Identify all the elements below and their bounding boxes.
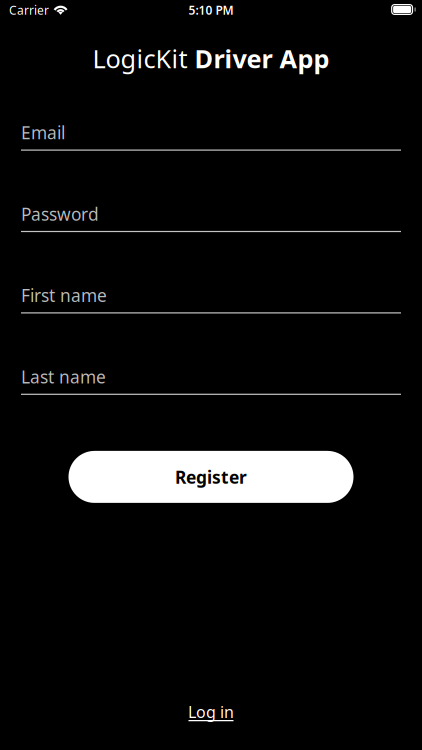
button[interactable]: Password — [21, 202, 401, 232]
staticText: First name — [21, 284, 107, 307]
button[interactable]: Email — [21, 120, 401, 151]
staticText: Email — [21, 121, 65, 144]
button[interactable]: Register — [68, 451, 353, 503]
staticText: Driver App — [194, 42, 329, 75]
staticText: Log in — [188, 701, 234, 722]
staticText: Register — [175, 465, 247, 488]
button[interactable]: Last name — [21, 365, 401, 395]
staticText: 5:10 PM — [188, 2, 233, 18]
staticText: Password — [21, 202, 99, 225]
staticText: Last name — [21, 365, 106, 388]
button[interactable]: First name — [21, 283, 401, 313]
staticText: LogicKit — [92, 42, 194, 75]
staticText: Carrier — [9, 2, 49, 18]
button[interactable]: Log in — [180, 701, 242, 723]
